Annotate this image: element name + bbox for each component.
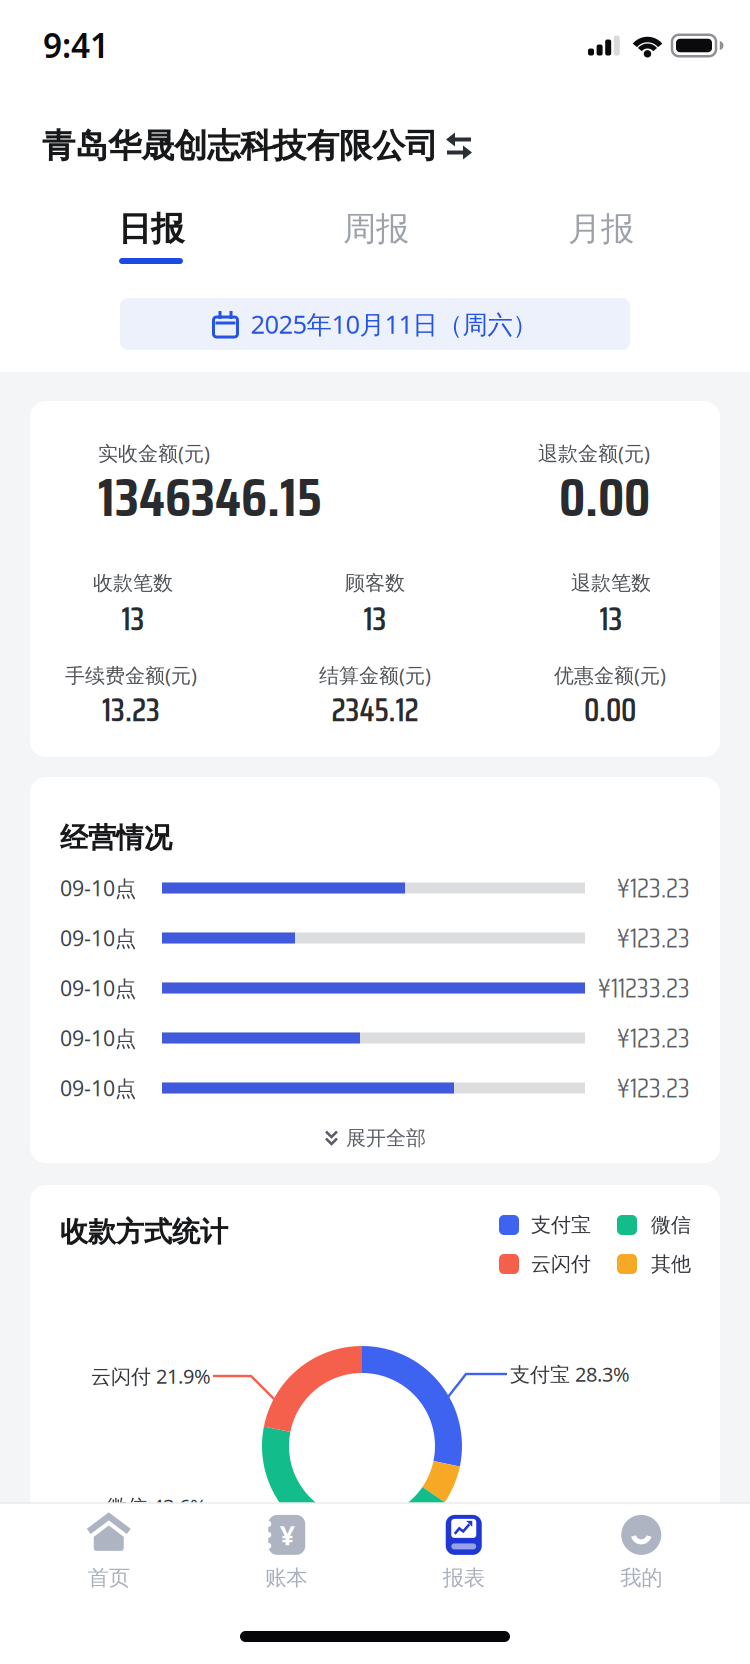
- staticText: 手续费金额(元): [65, 662, 197, 688]
- staticText: 退款笔数: [571, 571, 651, 595]
- staticText: 微信 43.6%: [107, 1493, 207, 1519]
- staticText: 收款方式统计: [60, 1215, 228, 1249]
- staticText: 1346346.15: [98, 454, 322, 540]
- staticText: 9:41: [43, 23, 109, 67]
- button[interactable]: 青岛华晟创志科技有限公司: [42, 125, 472, 166]
- staticText: 实收金额(元): [98, 440, 210, 466]
- button[interactable]: 首页: [20, 1497, 197, 1607]
- staticText: 首页: [88, 1565, 130, 1591]
- staticText: 09-10点: [60, 1024, 136, 1052]
- staticText: 月报: [568, 208, 634, 249]
- staticText: ¥123.23: [617, 866, 690, 909]
- staticText: 报表: [443, 1565, 485, 1591]
- staticText: 13.23: [102, 685, 160, 735]
- staticText: 09-10点: [60, 1074, 136, 1102]
- staticText: 其他: [651, 1252, 691, 1276]
- button[interactable]: 月报: [488, 196, 713, 262]
- staticText: 0.00: [559, 454, 650, 540]
- button[interactable]: ¥: [197, 1497, 375, 1607]
- staticText: 09-10点: [60, 924, 136, 952]
- staticText: 云闪付: [531, 1252, 591, 1276]
- button[interactable]: 展开全部: [256, 1116, 496, 1160]
- staticText: 收款笔数: [93, 571, 173, 595]
- staticText: ¥123.23: [617, 1016, 690, 1059]
- staticText: 顾客数: [345, 571, 405, 595]
- staticText: 13: [599, 594, 622, 644]
- button[interactable]: 周报: [263, 196, 488, 262]
- staticText: 微信: [651, 1213, 691, 1237]
- staticText: 支付宝: [531, 1213, 591, 1237]
- staticText: 周报: [343, 208, 409, 249]
- button[interactable]: 报表: [375, 1497, 552, 1607]
- staticText: 结算金额(元): [319, 662, 431, 688]
- staticText: 账本: [265, 1565, 307, 1591]
- staticText: ¥123.23: [617, 916, 690, 959]
- staticText: 支付宝 28.3%: [510, 1361, 630, 1387]
- staticText: 13: [363, 594, 386, 644]
- staticText: 我的: [620, 1565, 662, 1591]
- button[interactable]: 2025年10月11日（周六）: [120, 298, 630, 350]
- staticText: 日报: [118, 208, 184, 249]
- staticText: 优惠金额(元): [554, 662, 666, 688]
- staticText: 经营情况: [60, 821, 172, 855]
- button[interactable]: 日报: [38, 196, 263, 262]
- staticText: ¥123.23: [617, 1066, 690, 1109]
- button[interactable]: 我的: [552, 1497, 730, 1607]
- staticText: 2025年10月11日（周六）: [250, 307, 537, 341]
- staticText: 09-10点: [60, 874, 136, 902]
- staticText: ¥11233.23: [598, 966, 690, 1009]
- staticText: ¥: [280, 1517, 295, 1553]
- staticText: 展开全部: [346, 1126, 426, 1150]
- staticText: 云闪付 21.9%: [91, 1363, 211, 1389]
- staticText: 09-10点: [60, 974, 136, 1002]
- staticText: 2345.12: [331, 685, 418, 735]
- staticText: 0.00: [584, 685, 636, 735]
- staticText: 青岛华晟创志科技有限公司: [42, 125, 438, 166]
- staticText: 退款金额(元): [538, 440, 650, 466]
- staticText: 13: [121, 594, 144, 644]
